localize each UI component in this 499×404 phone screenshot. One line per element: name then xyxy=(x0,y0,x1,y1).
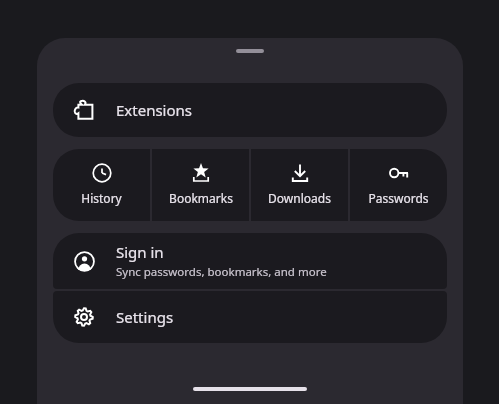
button[interactable]: Bookmarks xyxy=(152,149,249,221)
staticText: Passwords xyxy=(368,190,429,206)
button[interactable]: Passwords xyxy=(350,149,447,221)
staticText: Settings xyxy=(116,307,174,327)
staticText: Sign in xyxy=(116,242,164,262)
button[interactable]: Extensions xyxy=(53,83,447,137)
staticText: Extensions xyxy=(116,100,193,120)
button[interactable]: Sign in xyxy=(53,233,447,289)
staticText: Bookmarks xyxy=(169,190,233,206)
staticText: Sync passwords, bookmarks, and more xyxy=(116,264,327,280)
button[interactable]: History xyxy=(53,149,150,221)
staticText: Downloads xyxy=(268,190,331,206)
button[interactable]: Settings xyxy=(53,291,447,343)
button[interactable]: Downloads xyxy=(251,149,348,221)
staticText: History xyxy=(81,190,122,206)
